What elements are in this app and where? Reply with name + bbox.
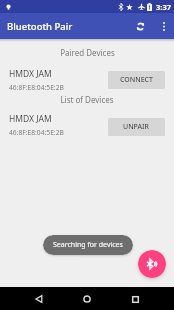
- staticText: Searching for devices: [53, 240, 123, 250]
- staticText: UNPAIR: [123, 122, 150, 132]
- staticText: HMDX JAM: [9, 113, 52, 125]
- staticText: Bluetooth Pair: [7, 20, 73, 33]
- button[interactable]: Paired Devices: [0, 46, 174, 58]
- staticText: 3:37: [156, 2, 171, 12]
- button[interactable]: HMDX JAM: [0, 66, 174, 92]
- button[interactable]: HMDX JAM: [0, 111, 174, 137]
- staticText: 46:8F:E8:04:5E:2B: [9, 83, 64, 92]
- button[interactable]: Refresh: [131, 17, 149, 35]
- staticText: 46:8F:E8:04:5E:2B: [9, 128, 64, 137]
- button[interactable]: CONNECT: [108, 71, 165, 89]
- button[interactable]: Searching for devices: [43, 235, 133, 255]
- staticText: Paired Devices: [60, 47, 115, 58]
- button[interactable]: Back: [29, 289, 49, 309]
- button[interactable]: UNPAIR: [108, 118, 165, 136]
- staticText: HMDX JAM: [9, 68, 52, 80]
- button[interactable]: More options: [155, 18, 172, 35]
- staticText: CONNECT: [120, 75, 153, 85]
- button[interactable]: Home: [77, 289, 97, 309]
- button[interactable]: Recent apps: [125, 289, 145, 309]
- button[interactable]: Scan for Bluetooth devices: [138, 250, 166, 278]
- staticText: List of Devices: [60, 94, 114, 105]
- button[interactable]: List of Devices: [0, 93, 174, 105]
